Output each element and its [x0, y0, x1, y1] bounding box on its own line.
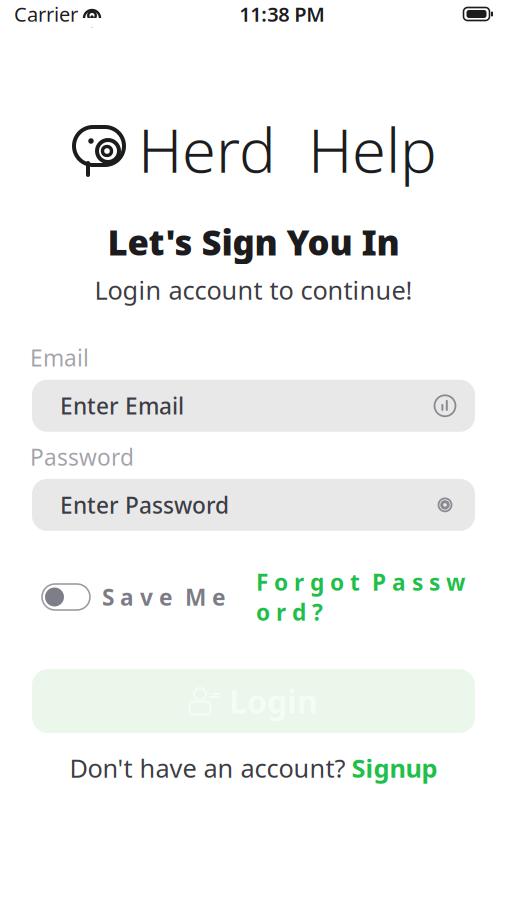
- staticText: F o r g o t P a s s w o r d ?: [256, 567, 465, 627]
- button[interactable]: Signup: [351, 751, 437, 785]
- staticText: Enter Email: [60, 391, 184, 421]
- staticText: Enter Password: [60, 490, 229, 520]
- staticText: Password: [30, 442, 134, 472]
- staticText: Signup: [351, 751, 437, 785]
- staticText: Email: [30, 343, 89, 373]
- button[interactable]: S a v e M e: [42, 582, 226, 612]
- staticText: Login account to continue!: [94, 273, 412, 307]
- button[interactable]: F o r g o t P a s s w o r d ?: [256, 567, 465, 627]
- staticText: Carrier: [14, 1, 78, 27]
- staticText: 11:38 PM: [239, 1, 325, 27]
- staticText: Herd Help: [138, 108, 437, 190]
- button[interactable]: Enter Password: [32, 479, 475, 531]
- button[interactable]: Enter Email: [32, 380, 475, 432]
- staticText: Let's Sign You In: [107, 219, 399, 265]
- staticText: S a v e M e: [102, 582, 226, 612]
- staticText: Login: [229, 680, 318, 722]
- staticText: Don't have an account?: [69, 751, 345, 785]
